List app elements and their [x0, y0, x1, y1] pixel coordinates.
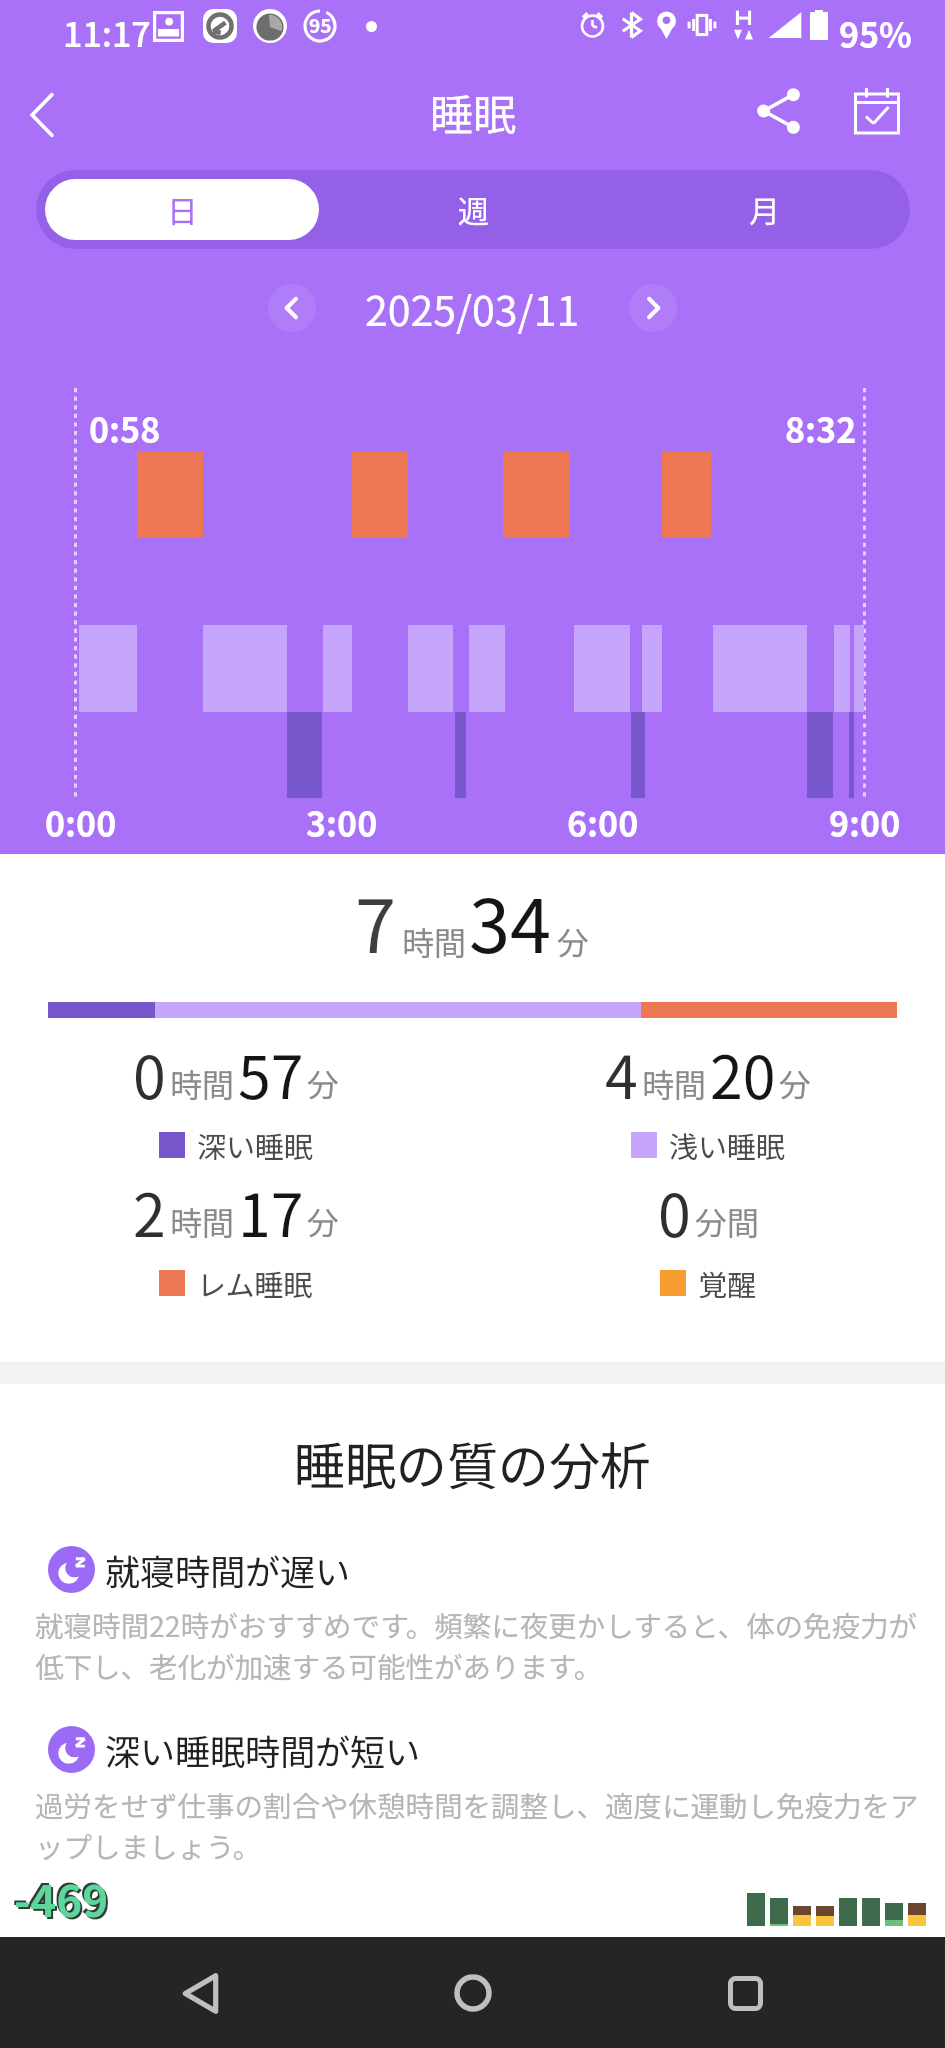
staticText: 0:00: [45, 798, 117, 847]
staticText: 9:00: [829, 798, 901, 847]
staticText: 時間: [170, 1198, 235, 1244]
staticText: 0:58: [89, 404, 161, 453]
staticText: 6:00: [567, 798, 639, 847]
button[interactable]: Next day: [629, 284, 677, 332]
staticText: 過労をせず仕事の割合や休憩時間を調整し、適度に運動し免疫力をアップしましょう。: [35, 1784, 929, 1866]
staticText: 浅い睡眠: [669, 1124, 786, 1166]
button[interactable]: Back: [4, 77, 80, 153]
staticText: 時間: [402, 918, 467, 964]
staticText: 月: [749, 187, 780, 232]
staticText: 分: [779, 1060, 812, 1106]
button[interactable]: Calendar: [838, 72, 916, 150]
staticText: 分: [307, 1198, 340, 1244]
staticText: 時間: [642, 1060, 707, 1106]
button[interactable]: Back: [164, 1957, 236, 2029]
button[interactable]: Recents: [709, 1957, 781, 2029]
staticText: 2025/03/11: [365, 278, 580, 337]
button[interactable]: Home: [437, 1957, 509, 2029]
staticText: 睡眠: [430, 81, 516, 143]
staticText: 95%: [839, 9, 912, 58]
staticText: 週: [458, 187, 489, 232]
staticText: 分間: [695, 1198, 760, 1244]
staticText: 時間: [170, 1060, 235, 1106]
staticText: 34: [469, 867, 552, 974]
button[interactable]: 日: [45, 179, 319, 240]
staticText: 11:17: [63, 8, 151, 57]
staticText: -469: [12, 1864, 107, 1928]
staticText: 睡眠の質の分析: [294, 1426, 652, 1500]
staticText: 7: [355, 867, 397, 974]
staticText: 57: [238, 1031, 304, 1116]
button[interactable]: 月: [628, 179, 901, 240]
staticText: 深い睡眠時間が短い: [105, 1724, 421, 1775]
staticText: 2: [133, 1169, 166, 1254]
staticText: -469: [16, 1868, 111, 1932]
staticText: 覚醒: [698, 1262, 757, 1304]
staticText: 分: [557, 918, 590, 964]
button[interactable]: Share: [740, 72, 818, 150]
staticText: 0: [658, 1169, 691, 1254]
staticText: 就寝時間22時がおすすめです。頻繁に夜更かしすると、体の免疫力が低下し、老化が加…: [35, 1604, 929, 1686]
staticText: レム睡眠: [197, 1262, 313, 1304]
staticText: -469: [14, 1866, 109, 1930]
staticText: 20: [710, 1031, 776, 1116]
staticText: 就寝時間が遅い: [105, 1544, 351, 1595]
staticText: 深い睡眠: [197, 1124, 314, 1166]
button[interactable]: 週: [337, 179, 610, 240]
staticText: 3:00: [306, 798, 378, 847]
staticText: 95: [309, 11, 332, 39]
staticText: 日: [167, 187, 198, 232]
staticText: 分: [307, 1060, 340, 1106]
staticText: 17: [238, 1169, 304, 1254]
button[interactable]: Previous day: [268, 284, 316, 332]
staticText: 8:32: [785, 404, 857, 453]
staticText: 0: [133, 1031, 166, 1116]
staticText: 4: [605, 1031, 638, 1116]
